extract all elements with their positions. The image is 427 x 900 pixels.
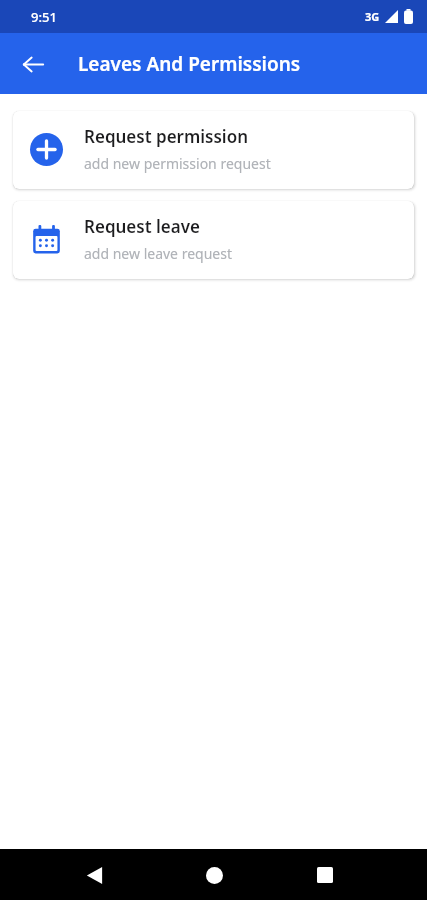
- staticText: Request leave: [84, 215, 200, 238]
- button[interactable]: Home: [192, 853, 236, 897]
- staticText: add new leave request: [84, 244, 232, 263]
- button[interactable]: Back: [72, 853, 116, 897]
- staticText: Leaves And Permissions: [78, 51, 301, 77]
- staticText: add new permission request: [84, 154, 271, 173]
- staticText: 9:51: [31, 8, 57, 26]
- button[interactable]: Back: [10, 41, 56, 87]
- button[interactable]: Recent apps: [303, 853, 347, 897]
- button[interactable]: Request permission: [13, 111, 414, 189]
- button[interactable]: Request leave: [13, 201, 414, 279]
- staticText: Request permission: [84, 125, 249, 148]
- staticText: 3G: [365, 9, 380, 24]
